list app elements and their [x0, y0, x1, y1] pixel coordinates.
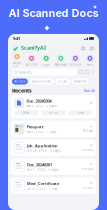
staticText: See all	[84, 88, 95, 93]
staticText: Merge PDF	[12, 61, 21, 68]
staticText: Doc_20240304	[26, 98, 51, 104]
button[interactable]: Academic	[72, 78, 89, 84]
staticText: To PDF	[49, 111, 58, 114]
staticText: PDF Doc	[82, 186, 93, 189]
staticText: AI Tools	[70, 63, 81, 66]
staticText: Mar 2, 2024 · 1 page	[27, 130, 57, 133]
button[interactable]: Med_Certificate	[11, 177, 96, 194]
button[interactable]: List view	[85, 70, 89, 74]
staticText: Search...	[18, 69, 33, 75]
staticText: ScanifyAI	[21, 44, 46, 51]
staticText: Jan 22, 2024 · 1 page	[27, 187, 59, 190]
staticText: Mar 4, 2024 · 2 pages	[26, 104, 57, 108]
button[interactable]: Split PDF	[24, 55, 39, 66]
staticText: Recents	[12, 87, 32, 94]
button[interactable]: Doc_20240201	[11, 158, 96, 175]
staticText: Academic	[74, 80, 86, 83]
button[interactable]: eSign	[39, 55, 53, 66]
button[interactable]: Sync	[80, 45, 86, 52]
staticText: ID Card	[83, 129, 93, 133]
staticText: AI Scanned Docs	[8, 6, 98, 19]
staticText: eSign	[42, 63, 50, 66]
staticText: Business Card	[32, 80, 51, 83]
staticText: Share	[23, 111, 30, 114]
staticText: Doc_20240201	[27, 162, 52, 167]
staticText: Split PDF	[26, 63, 38, 66]
staticText: Feb 28, 2024 · 4 pages	[27, 149, 61, 152]
staticText: Passport	[27, 124, 44, 129]
staticText: 9:41	[13, 36, 20, 41]
button[interactable]: Doc_20240304	[11, 95, 96, 118]
button[interactable]: Passport	[11, 121, 96, 137]
button[interactable]: Merge PDF	[10, 53, 24, 68]
staticText: PDF Doc	[82, 167, 93, 171]
button[interactable]: ID Card	[55, 78, 70, 84]
staticText: ID Card	[58, 80, 68, 83]
staticText: Watermark	[55, 63, 67, 66]
button[interactable]: ScanifyAI logo	[12, 45, 19, 52]
button[interactable]: Watermark	[53, 55, 68, 66]
staticText: More	[86, 63, 93, 66]
staticText: Med_Certificate	[27, 181, 59, 186]
button[interactable]: Grid view	[79, 70, 83, 74]
button[interactable]: Settings	[88, 45, 95, 52]
button[interactable]: AI Tools	[68, 55, 83, 66]
button[interactable]: Job_Application	[11, 139, 96, 156]
staticText: Feb 1, 2024 · 3 pages	[27, 168, 59, 171]
staticText: Job_Application	[27, 143, 58, 148]
button[interactable]: More	[83, 55, 97, 66]
button[interactable]: More options	[91, 70, 95, 74]
staticText: SCAN · ORGANISE	[21, 51, 32, 53]
staticText: View	[77, 111, 83, 114]
staticText: All Docs	[14, 80, 25, 83]
staticText: PDF Doc	[82, 148, 93, 152]
button[interactable]: Business Card	[30, 78, 53, 84]
button[interactable]: All Docs	[12, 78, 28, 84]
